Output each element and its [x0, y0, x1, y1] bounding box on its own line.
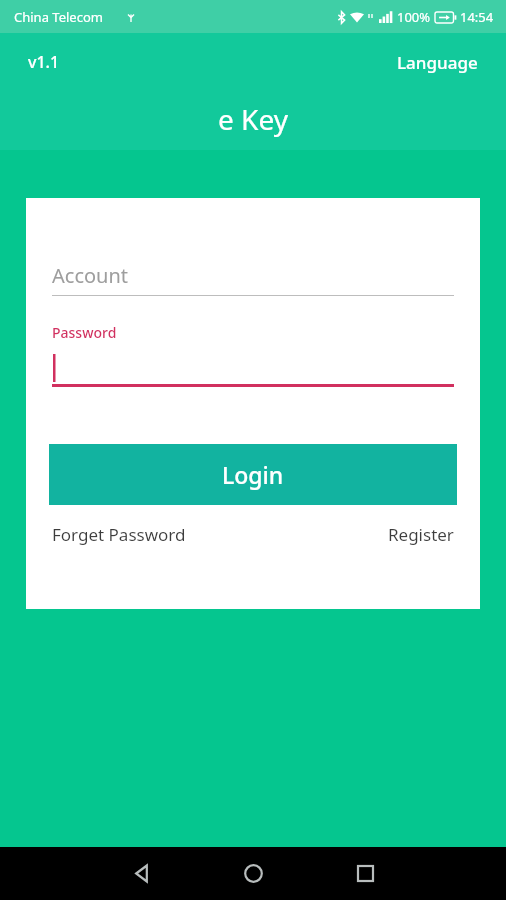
- button[interactable]: Home: [197, 847, 309, 900]
- button[interactable]: Register: [388, 517, 454, 552]
- button[interactable]: Recent apps: [309, 847, 421, 900]
- button[interactable]: Language: [391, 47, 484, 78]
- button[interactable]: [52, 352, 454, 384]
- staticText: Password: [52, 323, 117, 342]
- staticText: Account: [52, 262, 129, 289]
- staticText: 100%: [397, 8, 431, 26]
- button[interactable]: Forget Password: [52, 517, 186, 552]
- button[interactable]: Account: [52, 255, 454, 295]
- button[interactable]: Back: [85, 847, 197, 900]
- staticText: 14:54: [460, 8, 494, 26]
- button[interactable]: v1.1: [22, 47, 66, 77]
- staticText: China Telecom: [14, 8, 103, 26]
- staticText: e Key: [218, 100, 288, 138]
- staticText: Language: [397, 51, 478, 74]
- staticText: Login: [222, 459, 284, 490]
- staticText: Register: [388, 523, 454, 546]
- staticText: v1.1: [28, 51, 60, 73]
- button[interactable]: Login: [49, 444, 457, 505]
- staticText: Forget Password: [52, 523, 186, 546]
